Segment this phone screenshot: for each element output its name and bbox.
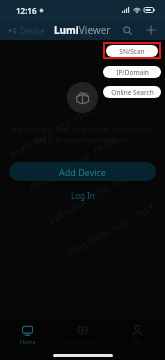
button[interactable]: Log In: [65, 188, 101, 203]
staticText: PERSONAL USE ONLY: [46, 166, 138, 226]
staticText: SN/Scan: [119, 47, 145, 56]
button[interactable]: Notification: [55, 322, 110, 348]
button[interactable]: Device: [6, 23, 47, 38]
staticText: 12:16: [16, 5, 37, 16]
staticText: Log in to access more features.: [35, 136, 130, 145]
staticText: Home: [20, 338, 36, 345]
staticText: Not logged in. Only local devices can be…: [11, 125, 155, 134]
button[interactable]: Add Device: [9, 162, 156, 181]
staticText: Add Device: [59, 166, 106, 178]
staticText: Device: [20, 25, 45, 36]
staticText: IP/Domain: [116, 68, 149, 77]
staticText: PERSONAL USE ONLY: [27, 134, 119, 193]
button[interactable]: Home: [0, 322, 55, 348]
button[interactable]: Search: [120, 23, 134, 37]
button[interactable]: IP/Domain: [103, 66, 161, 78]
staticText: PERSONAL USE ONLY: [8, 101, 100, 161]
button[interactable]: SN/Scan: [106, 45, 158, 57]
staticText: Online Search: [111, 88, 154, 97]
button[interactable]: Online Search: [103, 86, 161, 98]
button[interactable]: Add: [144, 23, 158, 37]
staticText: LumiViewer: [54, 23, 111, 37]
staticText: Log In: [71, 190, 95, 201]
